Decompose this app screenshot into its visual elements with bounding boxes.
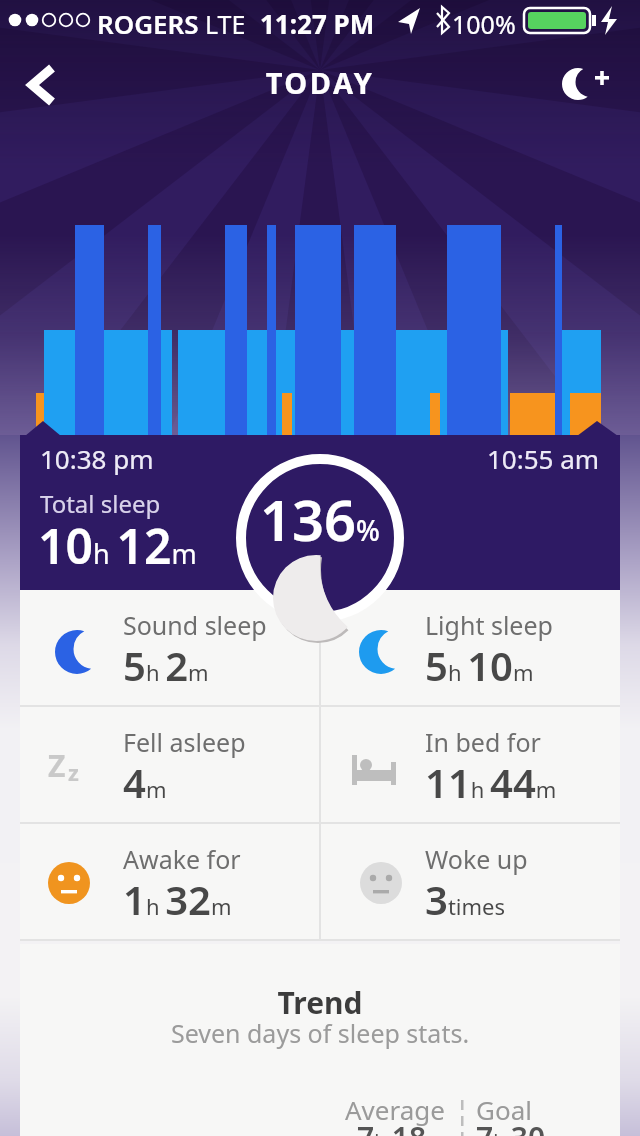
- staticText: Fell asleep: [123, 725, 246, 759]
- staticText: 7h 18m: [357, 1117, 445, 1136]
- button[interactable]: [20, 944, 620, 1136]
- staticText: 3times: [425, 872, 506, 926]
- staticText: Z: [48, 745, 66, 786]
- staticText: 4m: [123, 755, 167, 809]
- staticText: Woke up: [425, 842, 528, 876]
- button[interactable]: [320, 707, 620, 824]
- staticText: 7h 30m: [476, 1117, 564, 1136]
- staticText: ROGERS: [97, 6, 199, 41]
- staticText: Average: [345, 1092, 445, 1127]
- staticText: 10:38 pm: [40, 441, 154, 476]
- staticText: Sound sleep: [123, 608, 267, 642]
- staticText: In bed for: [425, 725, 541, 759]
- staticText: 100%: [452, 7, 516, 41]
- button[interactable]: [550, 55, 620, 115]
- staticText: 5h 10m: [425, 638, 534, 692]
- staticText: Total sleep: [40, 487, 161, 520]
- staticText: LTE: [205, 7, 246, 41]
- button[interactable]: [20, 824, 320, 941]
- staticText: 5h 2m: [123, 638, 209, 692]
- staticText: 10:55 am: [487, 441, 600, 476]
- staticText: Awake for: [123, 842, 241, 876]
- staticText: 11:27 PM: [260, 6, 375, 41]
- button[interactable]: [320, 824, 620, 941]
- staticText: Goal: [476, 1092, 532, 1127]
- staticText: Trend: [0, 982, 640, 1023]
- staticText: 10h 12m: [38, 513, 197, 578]
- staticText: 1h 32m: [123, 872, 232, 926]
- staticText: TODAY: [0, 63, 640, 102]
- button[interactable]: [20, 707, 320, 824]
- staticText: Seven days of sleep stats.: [0, 1016, 640, 1050]
- staticText: 11h 44m: [425, 755, 557, 809]
- button[interactable]: [20, 590, 320, 707]
- button[interactable]: [320, 590, 620, 707]
- button[interactable]: [10, 55, 74, 115]
- staticText: Light sleep: [425, 608, 553, 642]
- staticText: z: [68, 757, 79, 787]
- staticText: 136%: [0, 481, 640, 557]
